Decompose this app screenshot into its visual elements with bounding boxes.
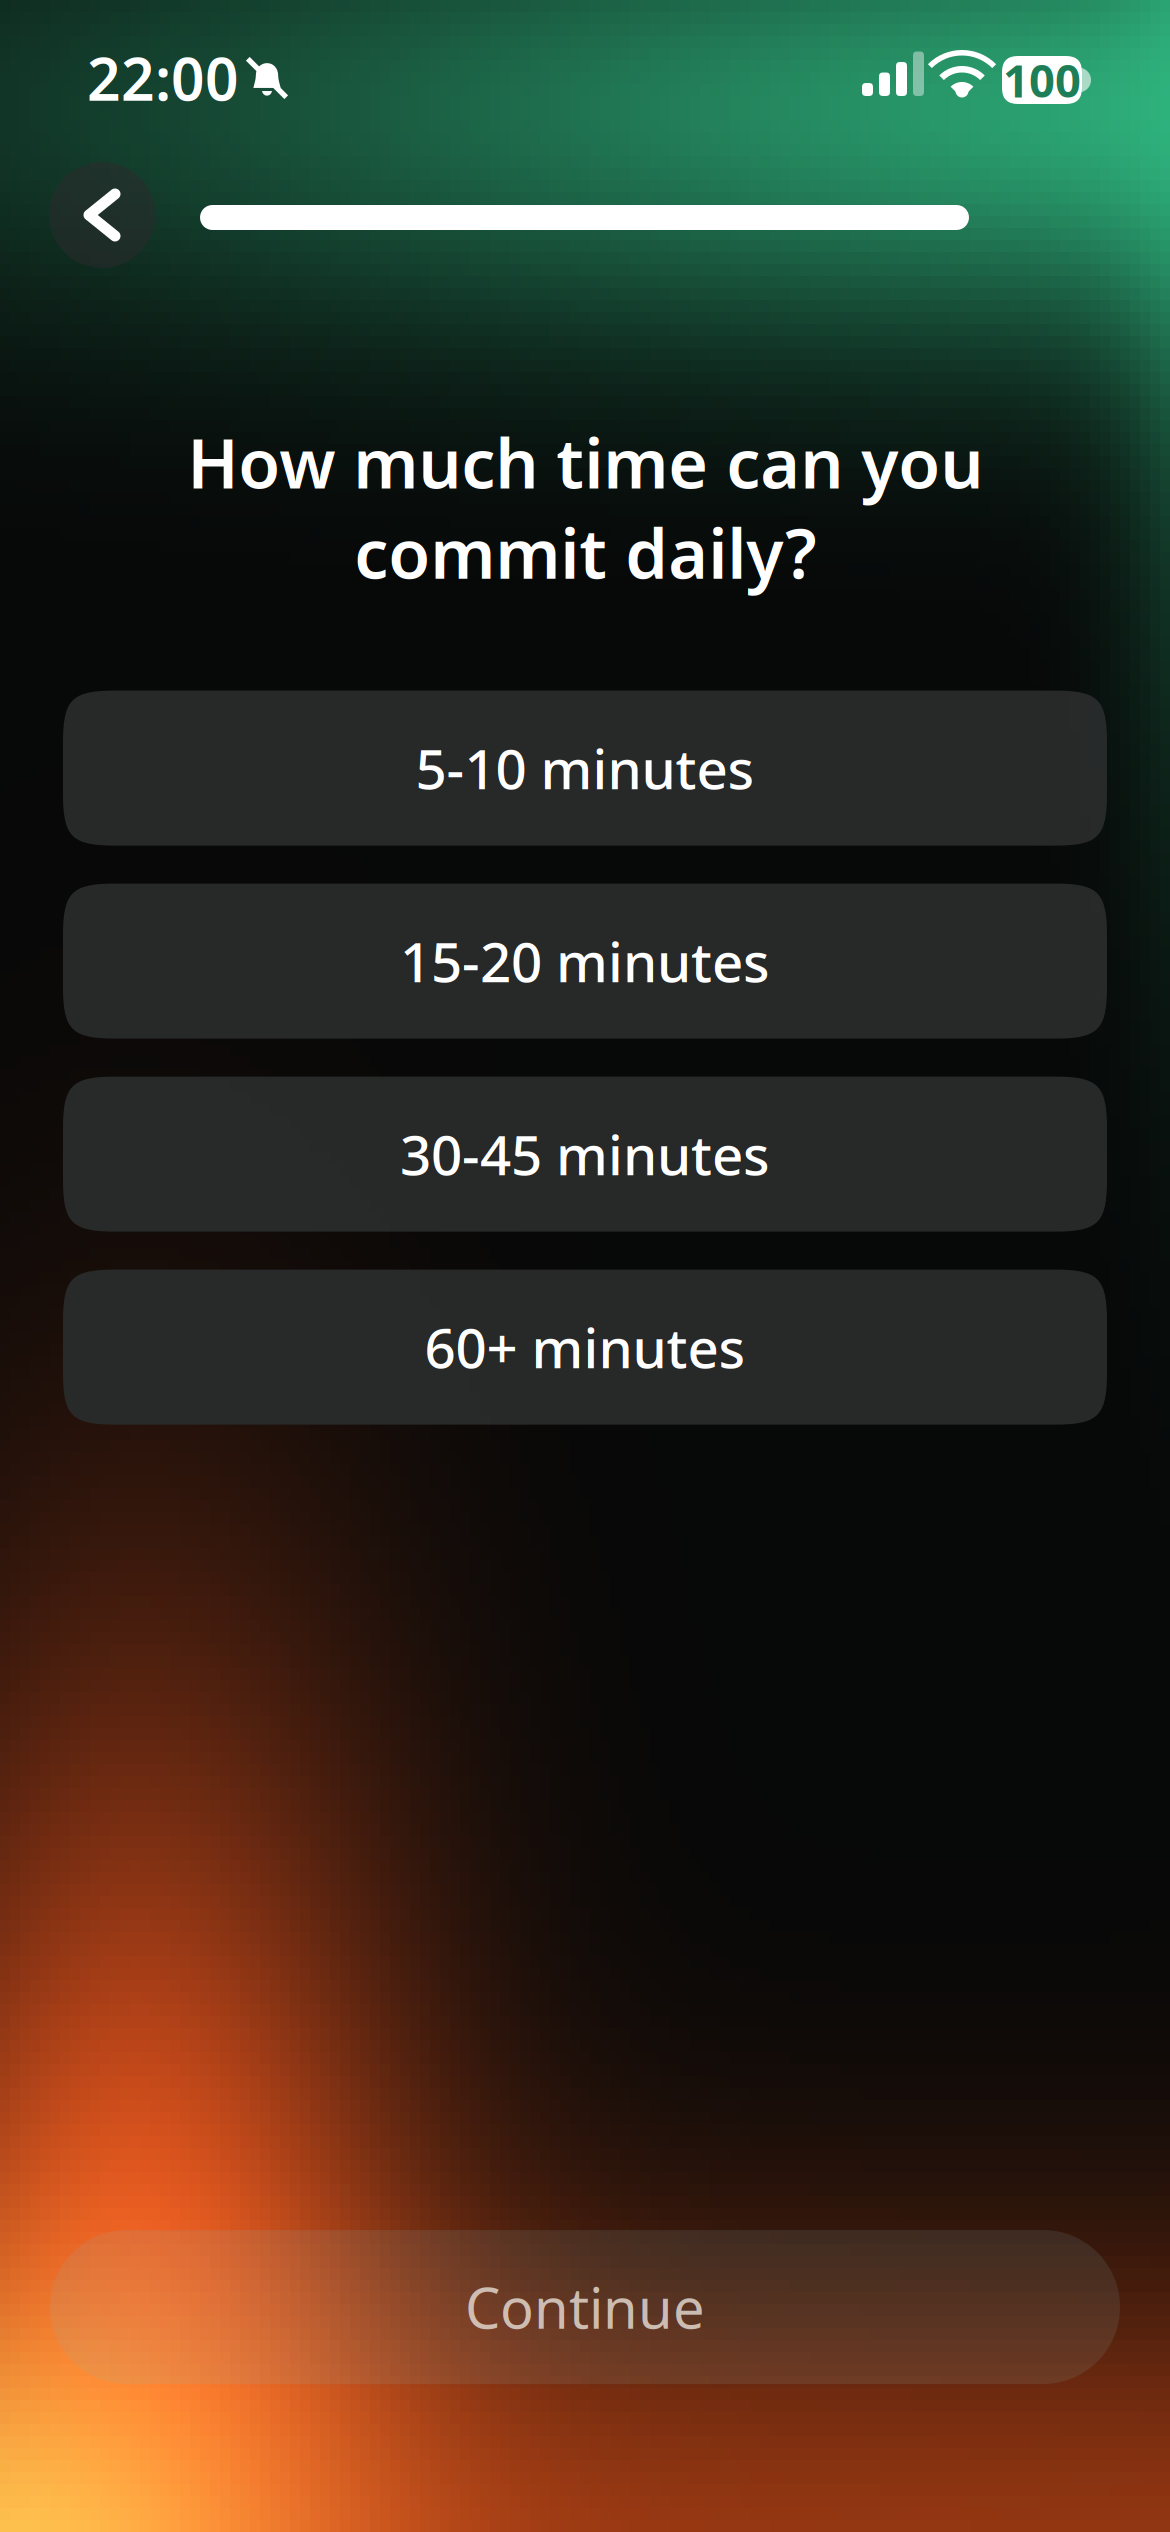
staticText: 100 <box>1003 50 1081 110</box>
staticText: 22:00 <box>87 39 239 117</box>
button[interactable]: 15-20 minutes <box>63 884 1107 1039</box>
button[interactable]: 60+ minutes <box>63 1270 1107 1425</box>
staticText: 30-45 minutes <box>400 1118 770 1190</box>
staticText: 60+ minutes <box>424 1311 745 1383</box>
staticText: 5-10 minutes <box>415 732 754 804</box>
staticText: 15-20 minutes <box>400 925 770 997</box>
staticText: Continue <box>465 2270 705 2344</box>
button[interactable]: Continue <box>50 2230 1120 2384</box>
button[interactable]: Back <box>0 0 1170 2532</box>
staticText: How much time can you commit daily? <box>187 417 983 598</box>
button[interactable]: 30-45 minutes <box>63 1077 1107 1232</box>
button[interactable]: 5-10 minutes <box>63 691 1107 846</box>
